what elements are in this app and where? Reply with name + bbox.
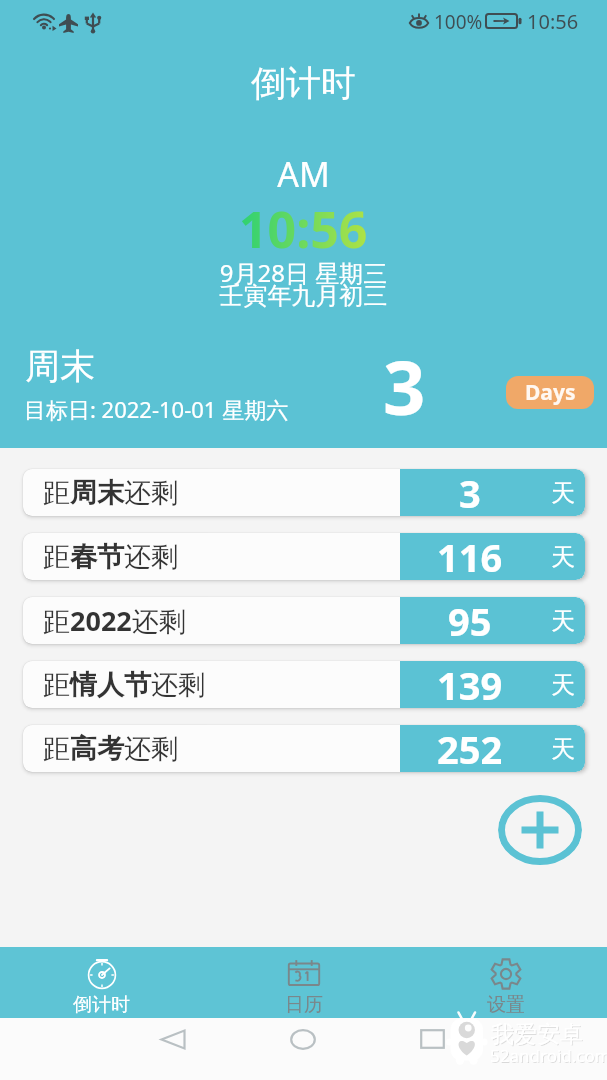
staticText: 95 (448, 597, 492, 642)
staticText: 设置 (487, 993, 525, 1017)
staticText: AM (0, 151, 607, 197)
button[interactable]: Recent apps (412, 1019, 452, 1059)
staticText: 倒计时 (0, 61, 607, 105)
button[interactable]: 距2022还剩 (23, 597, 585, 644)
button[interactable]: 距高考还剩 (23, 725, 585, 772)
staticText: 我爱安卓 (492, 1021, 584, 1050)
staticText: 100% (434, 9, 483, 35)
staticText: 壬寅年九月初三 (0, 281, 607, 311)
button[interactable]: 设置 (405, 947, 607, 1018)
staticText: 距周末还剩 (43, 476, 178, 510)
staticText: 日历 (285, 993, 323, 1017)
staticText: 252 (437, 725, 503, 770)
staticText: 3 (459, 469, 481, 514)
button[interactable]: 倒计时 (0, 947, 203, 1018)
staticText: 52android.com (490, 1044, 607, 1067)
button[interactable]: 日历 (203, 947, 405, 1018)
staticText: 天 (551, 478, 575, 508)
staticText: 目标日: 2022-10-01 星期六 (24, 394, 289, 424)
staticText: 距2022还剩 (43, 602, 186, 639)
staticText: 天 (551, 670, 575, 700)
staticText: 116 (437, 533, 503, 578)
staticText: 3 (383, 336, 426, 437)
staticText: 天 (551, 734, 575, 764)
button[interactable]: Add countdown (498, 795, 582, 865)
staticText: 倒计时 (73, 993, 130, 1017)
staticText: 距春节还剩 (43, 540, 178, 574)
staticText: 距高考还剩 (43, 732, 178, 766)
staticText: 139 (437, 661, 503, 706)
button[interactable]: Back (153, 1019, 193, 1059)
staticText: Days (525, 378, 576, 407)
staticText: 天 (551, 606, 575, 636)
staticText: 52android.com (491, 1045, 607, 1068)
button[interactable]: Days (506, 376, 594, 409)
staticText: 我爱安卓 (491, 1020, 583, 1049)
button[interactable]: 距情人节还剩 (23, 661, 585, 708)
staticText: 9月28日 星期三 (0, 256, 607, 289)
staticText: 距情人节还剩 (43, 668, 205, 702)
staticText: 周末 (25, 344, 95, 388)
button[interactable]: 距周末还剩 (23, 469, 585, 516)
staticText: 10:56 (239, 195, 368, 263)
button[interactable]: 距春节还剩 (23, 533, 585, 580)
staticText: 10:56 (527, 8, 579, 35)
staticText: 天 (551, 542, 575, 572)
button[interactable]: Home (283, 1019, 323, 1059)
